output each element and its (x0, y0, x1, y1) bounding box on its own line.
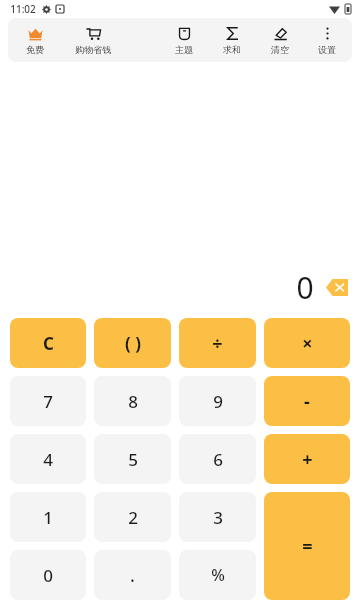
button[interactable]: 7 (10, 376, 86, 426)
staticText: 购物省钱 (75, 44, 111, 55)
button[interactable]: C (10, 318, 86, 368)
button[interactable]: Backspace (326, 279, 348, 296)
staticText: 3 (213, 506, 223, 529)
staticText: = (302, 534, 313, 559)
button[interactable]: 2 (94, 492, 171, 542)
staticText: % (211, 564, 225, 586)
staticText: 5 (128, 448, 138, 471)
staticText: 0 (43, 564, 53, 587)
button[interactable]: 4 (10, 434, 86, 484)
staticText: 设置 (318, 44, 336, 55)
button[interactable]: 求和 (208, 18, 256, 62)
staticText: 8 (128, 390, 138, 413)
staticText: 2 (128, 506, 138, 529)
staticText: C (43, 332, 54, 355)
staticText: 4 (43, 448, 53, 471)
button[interactable]: 1 (10, 492, 86, 542)
button[interactable]: + (264, 434, 350, 484)
staticText: 求和 (223, 44, 241, 55)
button[interactable]: 9 (179, 376, 256, 426)
staticText: 1 (43, 506, 53, 529)
staticText: 6 (213, 448, 223, 471)
staticText: 7 (43, 390, 53, 413)
button[interactable]: 主题 (160, 18, 208, 62)
button[interactable]: 3 (179, 492, 256, 542)
staticText: + (302, 447, 313, 472)
button[interactable]: = (264, 492, 350, 600)
button[interactable]: 0 (10, 550, 86, 600)
button[interactable]: 5 (94, 434, 171, 484)
button[interactable]: 6 (179, 434, 256, 484)
button[interactable]: 设置 (304, 18, 350, 62)
button[interactable]: 购物省钱 (58, 18, 128, 62)
staticText: - (304, 389, 310, 414)
staticText: 主题 (175, 44, 193, 55)
button[interactable]: × (264, 318, 350, 368)
staticText: 11:02 (10, 2, 36, 16)
staticText: ÷ (212, 331, 223, 356)
staticText: . (130, 563, 135, 588)
staticText: 0 (296, 267, 314, 308)
staticText: 9 (213, 390, 223, 413)
button[interactable]: 8 (94, 376, 171, 426)
staticText: 清空 (271, 44, 289, 55)
staticText: ( ) (125, 332, 141, 355)
button[interactable]: 清空 (256, 18, 304, 62)
button[interactable]: 免费 (12, 18, 58, 62)
button[interactable]: ( ) (94, 318, 171, 368)
button[interactable]: ÷ (179, 318, 256, 368)
staticText: × (302, 331, 313, 356)
button[interactable]: . (94, 550, 171, 600)
button[interactable]: % (179, 550, 256, 600)
button[interactable]: - (264, 376, 350, 426)
staticText: 免费 (26, 44, 44, 55)
